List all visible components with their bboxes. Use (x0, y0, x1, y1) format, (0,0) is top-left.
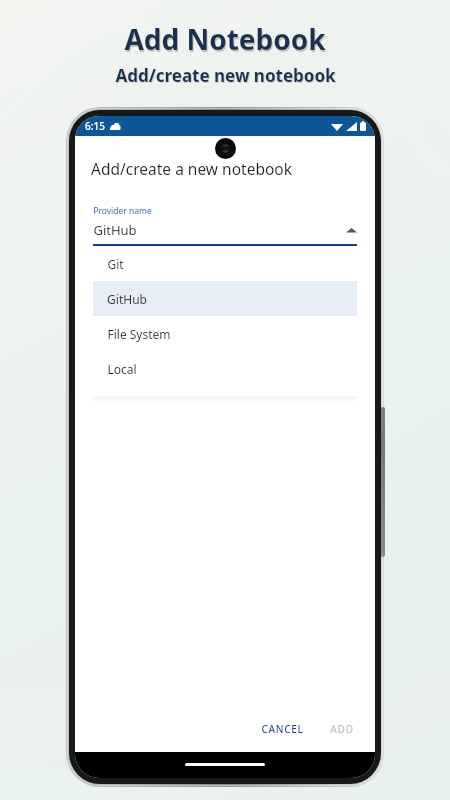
staticText: GitHub (93, 221, 137, 239)
staticText: GitHub (107, 291, 147, 307)
staticText: CANCEL (261, 722, 304, 736)
staticText: Add Notebook (125, 22, 327, 60)
staticText: Git (107, 256, 124, 272)
button[interactable]: File System (93, 316, 357, 351)
button[interactable]: Local (93, 351, 357, 386)
button[interactable]: CANCEL (252, 716, 313, 742)
button[interactable]: Git (93, 246, 357, 281)
button[interactable]: GitHub (93, 221, 357, 244)
staticText: Add Notebook (124, 20, 326, 58)
other: Collapse provider list (346, 227, 357, 234)
staticText: ADD (330, 722, 354, 736)
button[interactable]: ADD (321, 716, 363, 742)
button[interactable]: GitHub (93, 281, 357, 316)
staticText: Add/create a new notebook (91, 158, 292, 179)
staticText: 6:15 (85, 119, 105, 133)
staticText: File System (107, 326, 171, 342)
staticText: Provider name (93, 205, 152, 217)
staticText: Local (107, 361, 137, 377)
staticText: Add/create new notebook (116, 65, 337, 88)
staticText: Add/create new notebook (115, 64, 336, 87)
